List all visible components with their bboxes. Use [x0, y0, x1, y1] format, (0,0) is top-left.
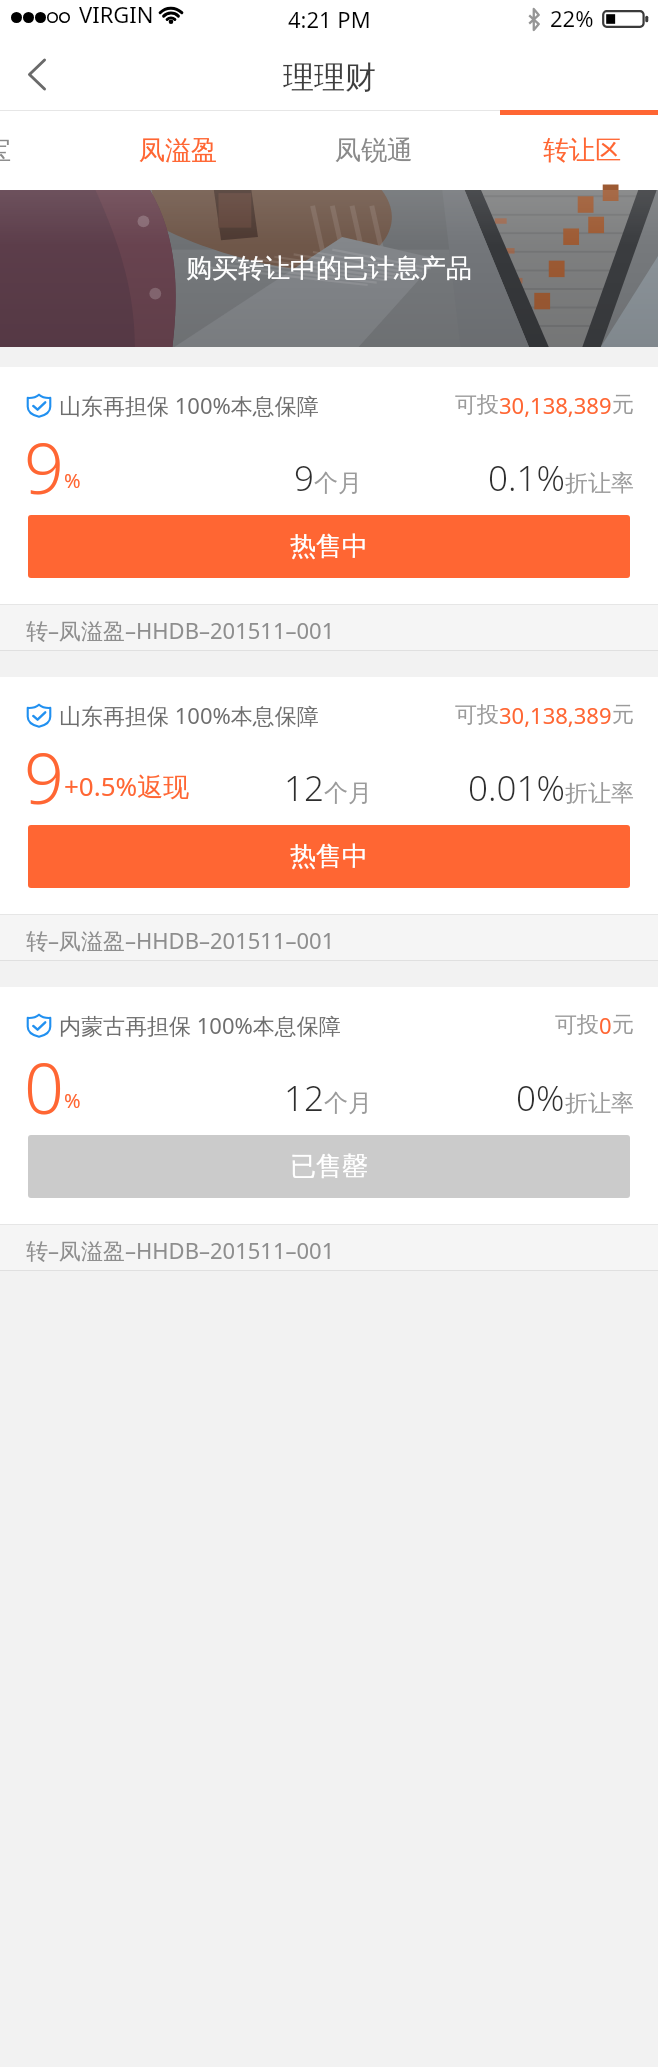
staticText: 元	[612, 1011, 634, 1039]
staticText: 山东再担保 100%本息保障	[59, 700, 319, 730]
staticText: 可投	[455, 391, 499, 419]
staticText: 个月	[314, 468, 362, 498]
staticText: 理理财	[283, 58, 376, 97]
staticText: 0%	[516, 1074, 565, 1122]
staticText: 4:21 PM	[288, 4, 371, 34]
staticText: 可投	[455, 701, 499, 729]
staticText: 12	[284, 1074, 324, 1122]
staticText: 0	[24, 1039, 64, 1132]
staticText: 0.1%	[488, 454, 565, 502]
staticText: %	[64, 467, 81, 494]
staticText: 折让率	[565, 1089, 634, 1118]
staticText: %	[64, 1087, 81, 1114]
staticText: 个月	[324, 1088, 372, 1118]
staticText: 凤锐通	[335, 134, 413, 167]
staticText: 热售中	[290, 530, 368, 563]
staticText: 22%	[550, 3, 594, 33]
staticText: 已售罄	[290, 1150, 368, 1183]
button[interactable]: 凤锐通	[274, 110, 474, 190]
staticText: 转–凤溢盈–HHDB–201511–001	[26, 1235, 335, 1265]
button[interactable]: 山东再担保 100%本息保障	[0, 677, 658, 961]
staticText: 转–凤溢盈–HHDB–201511–001	[26, 925, 335, 955]
button[interactable]: 转让区	[500, 110, 658, 190]
staticText: 转让区	[543, 134, 621, 167]
staticText: 凤溢盈	[139, 134, 217, 167]
staticText: 热售中	[290, 840, 368, 873]
button[interactable]: 凤溢盈	[78, 110, 278, 190]
button[interactable]: 理财宝	[0, 110, 72, 190]
staticText: 0.01%	[468, 764, 565, 812]
staticText: 购买转让中的已计息产品	[186, 252, 472, 285]
staticText: 转–凤溢盈–HHDB–201511–001	[26, 615, 335, 645]
button[interactable]: Back	[0, 46, 78, 110]
staticText: 30,138,389	[499, 700, 612, 730]
staticText: 内蒙古再担保 100%本息保障	[59, 1010, 341, 1040]
button[interactable]: 山东再担保 100%本息保障	[0, 367, 658, 651]
staticText: 折让率	[565, 469, 634, 498]
staticText: 9	[294, 454, 314, 502]
staticText: 0	[599, 1010, 612, 1040]
staticText: VIRGIN	[79, 0, 154, 29]
staticText: 9	[24, 729, 64, 822]
button[interactable]: 已售罄	[28, 1135, 630, 1198]
button[interactable]: 热售中	[28, 825, 630, 888]
staticText: 30,138,389	[499, 390, 612, 420]
staticText: 9	[24, 419, 64, 512]
button[interactable]: 内蒙古再担保 100%本息保障	[0, 987, 658, 1271]
staticText: 理财宝	[0, 134, 11, 167]
staticText: 山东再担保 100%本息保障	[59, 390, 319, 420]
staticText: 元	[612, 391, 634, 419]
staticText: +0.5%返现	[64, 768, 190, 804]
staticText: 折让率	[565, 779, 634, 808]
staticText: 可投	[555, 1011, 599, 1039]
button[interactable]: 热售中	[28, 515, 630, 578]
staticText: 个月	[324, 778, 372, 808]
staticText: 元	[612, 701, 634, 729]
staticText: 12	[284, 764, 324, 812]
